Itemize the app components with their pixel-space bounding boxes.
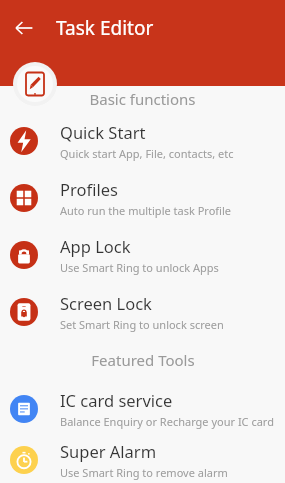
- staticText: Quick start App, File, contacts, etc: [60, 146, 234, 161]
- staticText: Use Smart Ring to remove alarm: [60, 465, 228, 480]
- staticText: Profiles: [60, 178, 118, 200]
- staticText: Task Editor: [56, 15, 154, 41]
- staticText: Basic functions: [89, 89, 196, 109]
- staticText: Featured Tools: [91, 350, 195, 370]
- staticText: Balance Enquiry or Recharge your IC card: [60, 414, 274, 429]
- button[interactable]: IC card service: [0, 380, 285, 437]
- button[interactable]: Back: [0, 4, 48, 52]
- staticText: Use Smart Ring to unlock Apps: [60, 260, 219, 275]
- staticText: Auto run the multiple task Profile: [60, 203, 231, 218]
- button[interactable]: Super Alarm: [0, 437, 285, 483]
- staticText: Screen Lock: [60, 292, 152, 314]
- button[interactable]: App Lock: [0, 226, 285, 283]
- button[interactable]: Profiles: [0, 169, 285, 226]
- button[interactable]: Quick Start: [0, 112, 285, 169]
- staticText: Super Alarm: [60, 440, 157, 462]
- staticText: Quick Start: [60, 121, 146, 143]
- button[interactable]: Edit task: [13, 62, 57, 106]
- staticText: Set Smart Ring to unlock screen: [60, 317, 224, 332]
- button[interactable]: Screen Lock: [0, 283, 285, 340]
- staticText: App Lock: [60, 235, 131, 257]
- staticText: IC card service: [60, 389, 173, 411]
